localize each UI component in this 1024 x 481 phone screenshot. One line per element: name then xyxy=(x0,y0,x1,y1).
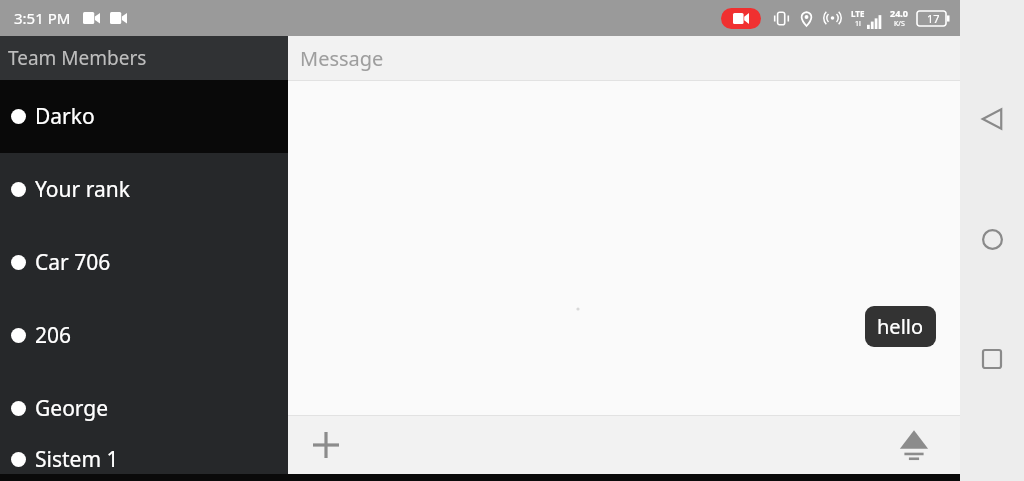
button[interactable]: Your rank xyxy=(0,153,288,226)
button[interactable]: Send xyxy=(890,421,938,469)
button[interactable]: Home xyxy=(969,216,1015,262)
staticText: Message xyxy=(300,45,384,72)
staticText: Sistem 1 xyxy=(35,445,119,474)
staticText: 24.0 xyxy=(890,7,908,19)
staticText: Your rank xyxy=(35,175,130,204)
button[interactable]: Car 706 xyxy=(0,226,288,299)
staticText: K/S xyxy=(894,19,905,29)
button[interactable]: Darko xyxy=(0,80,288,153)
staticText: LTE xyxy=(851,8,865,19)
staticText: 3:51 PM xyxy=(14,8,71,28)
staticText: hello xyxy=(877,313,924,340)
staticText: Team Members xyxy=(8,45,147,71)
button[interactable]: Sistem 1 xyxy=(0,445,288,474)
staticText: 17 xyxy=(927,11,940,26)
staticText: 206 xyxy=(35,321,72,350)
button[interactable]: George xyxy=(0,372,288,445)
staticText: Car 706 xyxy=(35,248,111,277)
button[interactable]: Back xyxy=(969,96,1015,142)
button[interactable]: Add attachment xyxy=(304,423,348,467)
staticText: 1l xyxy=(855,19,861,29)
button[interactable]: Recent apps xyxy=(969,336,1015,382)
button[interactable]: hello xyxy=(865,306,936,347)
staticText: Darko xyxy=(35,102,95,131)
button[interactable]: 206 xyxy=(0,299,288,372)
staticText: George xyxy=(35,394,109,423)
